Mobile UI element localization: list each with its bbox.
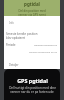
staticText: pgtidal [24,1,40,7]
staticText: Del hurtigt din position med dine [9,86,56,90]
staticText: blev opdateret [6,36,26,40]
button[interactable]: pgtidal [4,0,60,16]
staticText: Seneste opdatering for nu [29,51,58,54]
staticText: Opdater placering nu [34,44,58,47]
staticText: Del din position med [18,9,46,13]
staticText: GPS pgtidal [17,77,48,84]
staticText: Info [9,21,14,25]
staticText: venner via GPS nemt [18,13,46,16]
staticText: Detaljer [9,63,19,67]
staticText: venner nar du er pa farten ude [10,90,54,94]
staticText: Periode [6,43,16,47]
button[interactable]: Periode [6,43,58,47]
staticText: Seneste kendte position [6,32,38,36]
